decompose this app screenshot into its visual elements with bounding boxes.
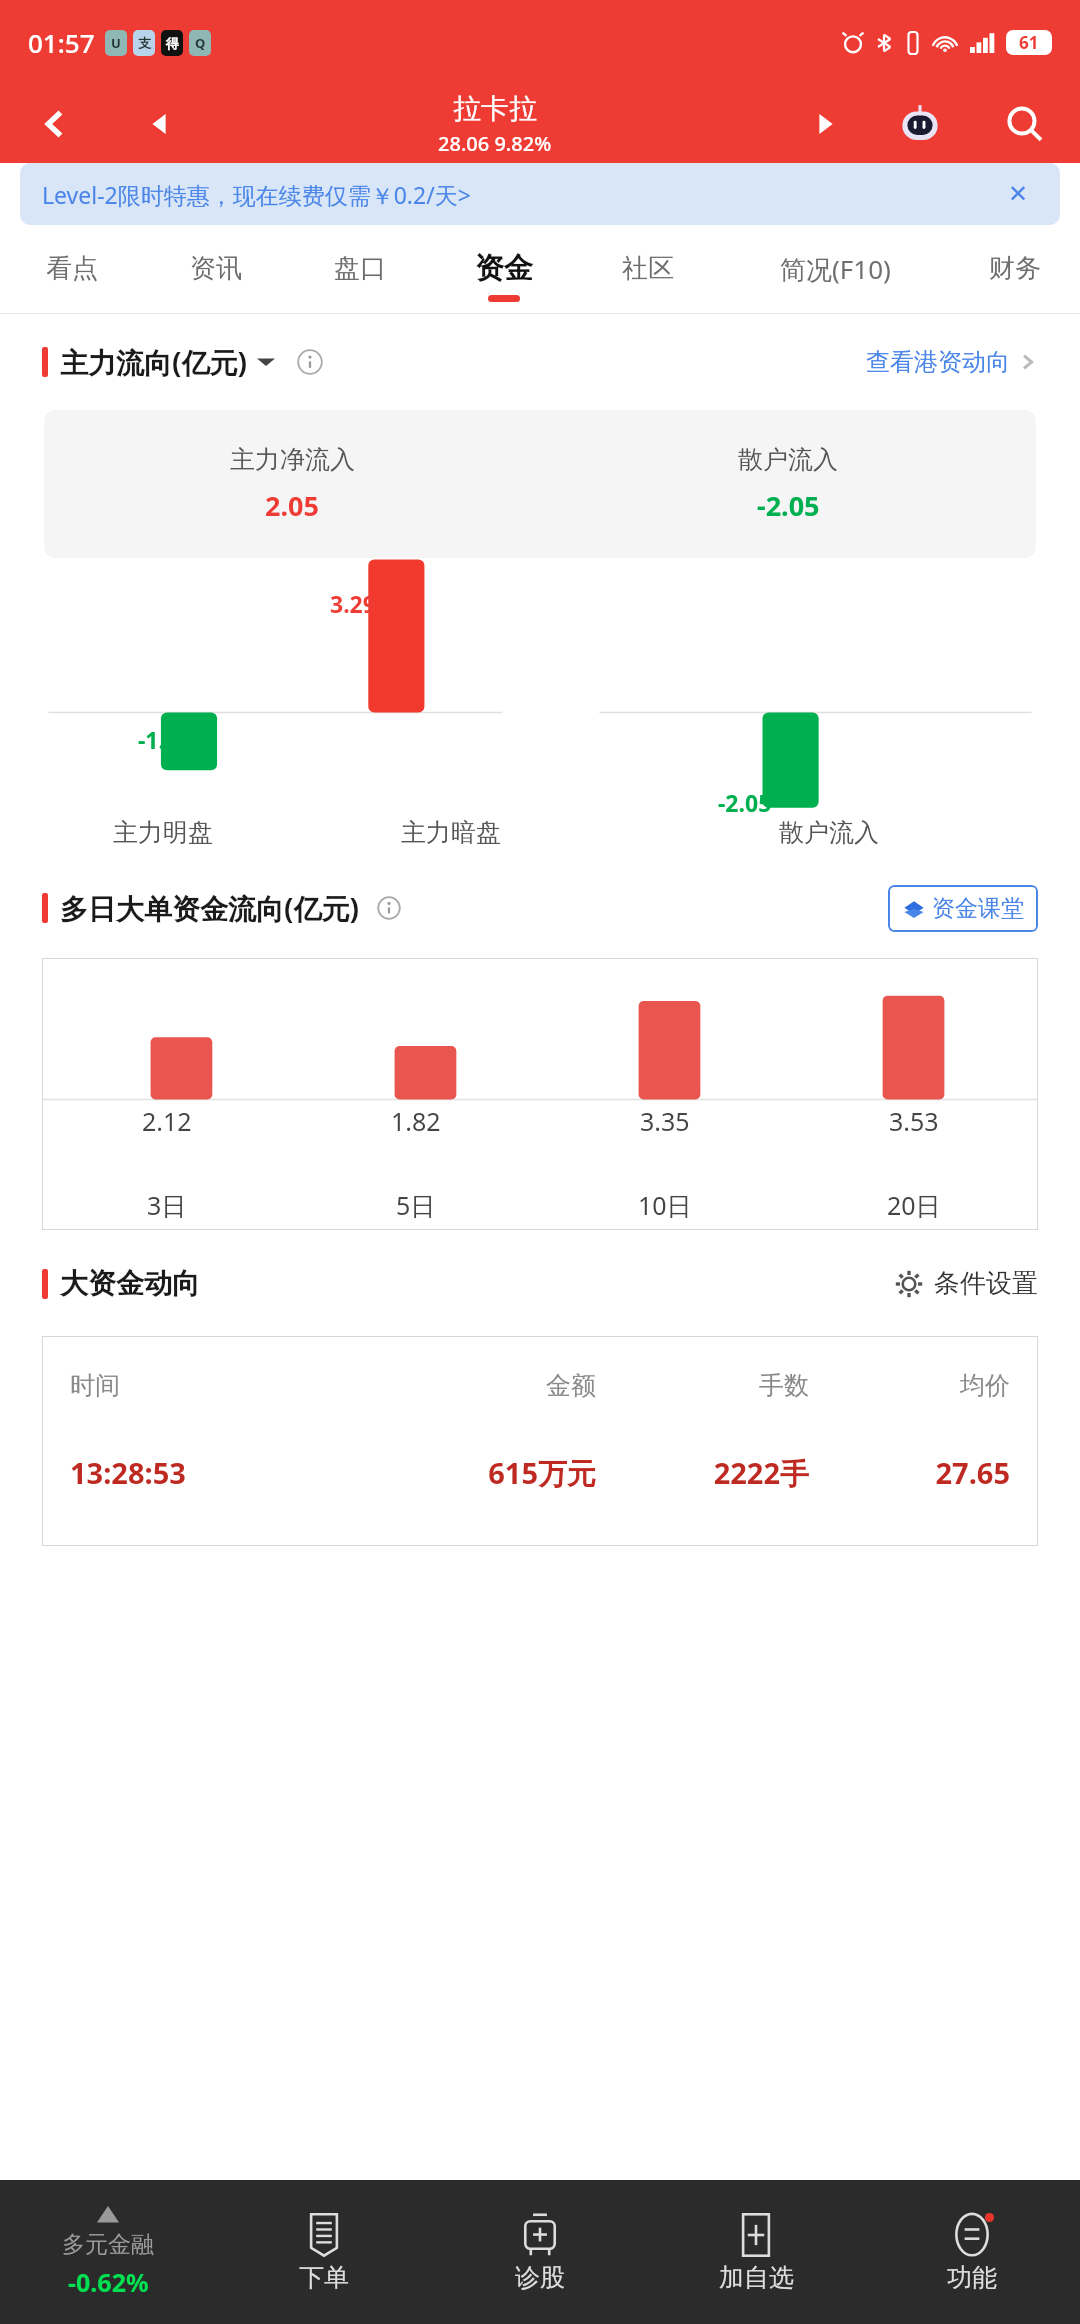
staticText: 资金 [475, 250, 533, 287]
staticText: 01:57 [28, 25, 95, 60]
staticText: 手数 [596, 1370, 809, 1401]
staticText: 615万元 [345, 1453, 596, 1493]
staticText: 诊股 [515, 2262, 565, 2293]
button[interactable]: 资讯 [144, 239, 288, 313]
button[interactable]: Search [970, 85, 1080, 163]
staticText: 2.12 [142, 1104, 192, 1138]
button[interactable]: 主力流向(亿元) [42, 343, 275, 381]
staticText: 13:28:53 [70, 1453, 345, 1492]
button[interactable]: Close [998, 174, 1038, 214]
button[interactable]: Level-2限时特惠，现在续费仅需￥0.2/天> [20, 163, 1060, 225]
staticText: 2222手 [596, 1453, 809, 1493]
staticText: 看点 [46, 252, 98, 285]
button[interactable]: Previous stock [110, 85, 210, 163]
staticText: 27.65 [809, 1453, 1010, 1492]
staticText: 3.35 [640, 1104, 690, 1138]
staticText: 28.06 9.82% [438, 130, 552, 157]
staticText: 社区 [622, 252, 674, 285]
staticText: 简况(F10) [780, 251, 891, 287]
button[interactable]: 财务 [950, 239, 1080, 313]
button[interactable]: Info [377, 896, 401, 920]
staticText: Level-2限时特惠，现在续费仅需￥0.2/天> [42, 179, 471, 210]
staticText: ✕ [1008, 180, 1029, 208]
staticText: 多日大单资金流向(亿元) [60, 889, 359, 927]
staticText: 主力净流入 [230, 444, 355, 475]
button[interactable]: 诊股 [432, 2180, 648, 2324]
staticText: 得 [166, 35, 179, 51]
staticText: 支 [138, 35, 151, 51]
staticText: Q [195, 34, 206, 52]
staticText: -2.05 [757, 487, 820, 524]
staticText: 功能 [947, 2262, 997, 2293]
staticText: 盘口 [334, 252, 386, 285]
staticText: 20日 [887, 1188, 941, 1222]
staticText: 拉卡拉 [453, 91, 537, 126]
button[interactable]: 看点 [0, 239, 144, 313]
button[interactable]: 2.12 [42, 958, 1038, 1230]
staticText: 3.53 [889, 1104, 939, 1138]
staticText: 金额 [345, 1370, 596, 1401]
staticText: 61 [1019, 31, 1039, 54]
staticText: 资讯 [190, 252, 242, 285]
button[interactable]: 主力净流入 [44, 410, 1036, 558]
button[interactable]: Next stock [780, 85, 870, 163]
staticText: 3日 [147, 1188, 187, 1222]
button[interactable]: AI assistant [870, 85, 970, 163]
staticText: 均价 [809, 1370, 1010, 1401]
staticText: 加自选 [719, 2262, 794, 2293]
staticText: 下单 [299, 2262, 349, 2293]
button[interactable]: 多元金融 [0, 2180, 216, 2324]
staticText: -0.62% [68, 2265, 149, 2299]
button[interactable]: 时间 [42, 1336, 1038, 1546]
staticText: -1.24 [138, 724, 192, 755]
button[interactable]: 资金 [432, 239, 576, 313]
button[interactable]: 多日大单资金流向(亿元) [42, 889, 359, 927]
staticText: U [111, 34, 121, 52]
staticText: 主力暗盘 [401, 817, 501, 848]
staticText: -2.05 [718, 787, 772, 818]
button[interactable]: 查看港资动向 [866, 347, 1038, 377]
staticText: 主力明盘 [113, 817, 213, 848]
staticText: 条件设置 [934, 1267, 1038, 1300]
staticText: 多元金融 [62, 2230, 154, 2259]
button[interactable]: Back [0, 85, 110, 163]
staticText: 3.29 [330, 588, 376, 619]
staticText: 大资金动向 [60, 1266, 200, 1301]
staticText: 主力流向(亿元) [60, 343, 247, 381]
button[interactable]: 加自选 [648, 2180, 864, 2324]
button[interactable]: 大资金动向 [42, 1266, 200, 1301]
button[interactable]: 下单 [216, 2180, 432, 2324]
staticText: 1.82 [391, 1104, 441, 1138]
button[interactable]: 简况(F10) [720, 239, 950, 313]
staticText: 查看港资动向 [866, 347, 1010, 377]
staticText: 5日 [396, 1188, 436, 1222]
button[interactable]: 资金课堂 [888, 885, 1038, 932]
staticText: 2.05 [265, 487, 319, 524]
button[interactable]: 盘口 [288, 239, 432, 313]
staticText: 10日 [638, 1188, 692, 1222]
button[interactable]: 功能 [864, 2180, 1080, 2324]
button[interactable]: 社区 [576, 239, 720, 313]
staticText: 资金课堂 [932, 894, 1024, 923]
button[interactable]: 拉卡拉 [210, 85, 780, 163]
button[interactable]: 条件设置 [894, 1267, 1038, 1300]
button[interactable]: Info [297, 349, 323, 375]
staticText: 财务 [989, 252, 1041, 285]
staticText: 散户流入 [779, 817, 879, 848]
staticText: 散户流入 [738, 444, 838, 475]
staticText: 时间 [70, 1370, 345, 1401]
